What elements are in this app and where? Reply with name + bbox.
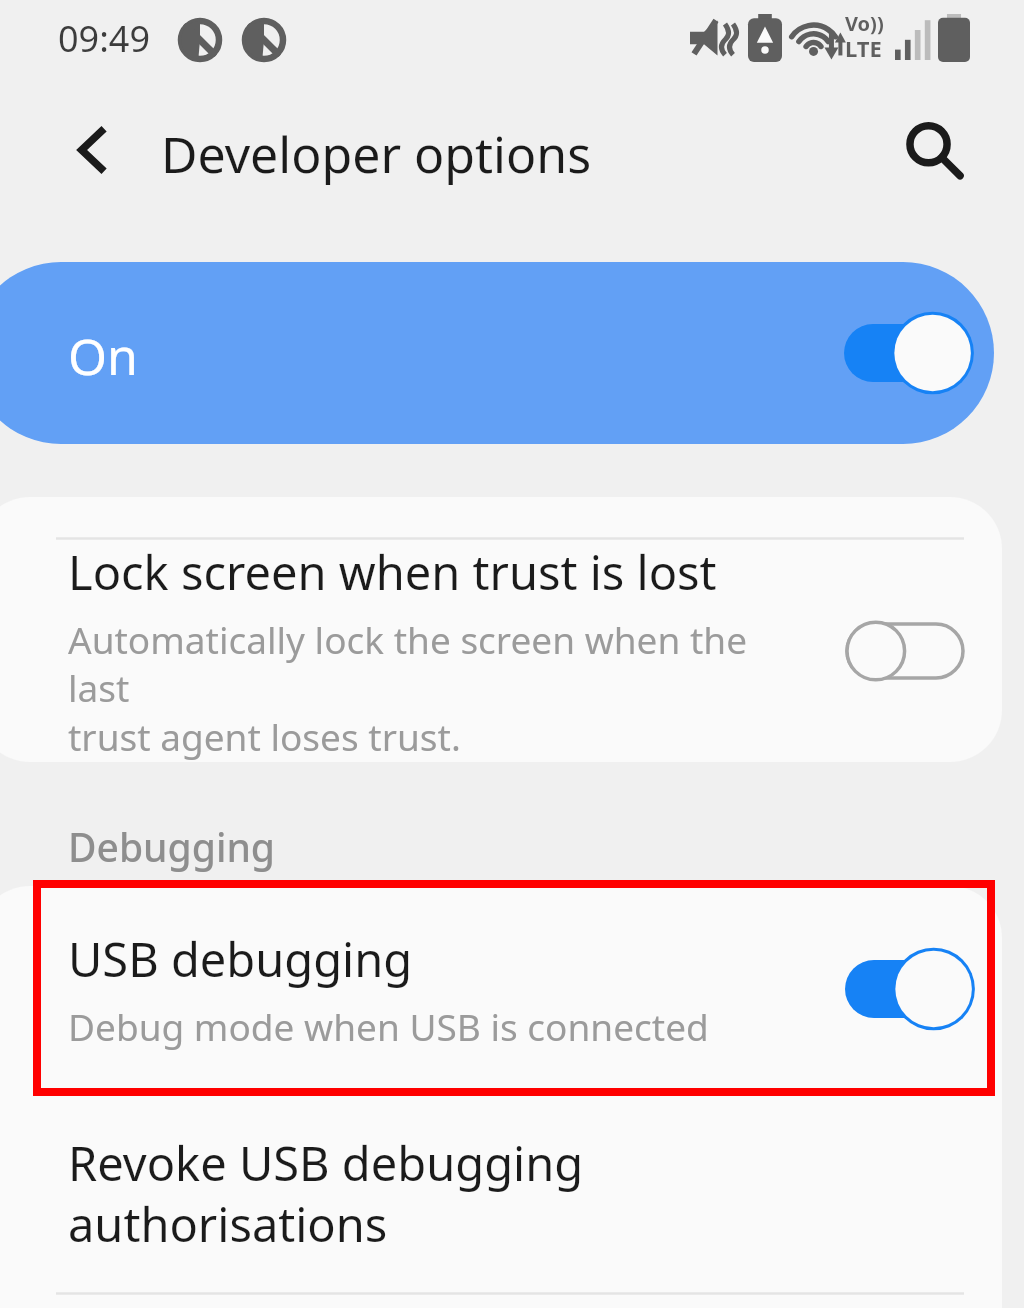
button[interactable]: USB debugging [0, 886, 1002, 1092]
staticText: On [68, 322, 138, 390]
staticText: Lock screen when trust is lost [68, 540, 717, 604]
staticText: LTE [845, 33, 882, 63]
button[interactable]: On [0, 262, 994, 444]
staticText: Revoke USB debugging authorisations [68, 1131, 584, 1256]
staticText: Automatically lock the screen when the l… [68, 614, 808, 762]
staticText: USB debugging [68, 927, 413, 991]
button[interactable]: Lock screen when trust is lost [0, 540, 1002, 762]
staticText: 09:49 [58, 14, 151, 63]
button[interactable]: Developer options [161, 120, 592, 188]
button[interactable]: Revoke USB debugging authorisations [0, 1095, 1002, 1292]
button[interactable]: Search [882, 100, 982, 200]
staticText: Debugging [68, 820, 276, 873]
button[interactable]: Back [44, 102, 140, 198]
staticText: Debug mode when USB is connected [68, 1001, 709, 1051]
staticText: Vo)) [845, 10, 884, 37]
